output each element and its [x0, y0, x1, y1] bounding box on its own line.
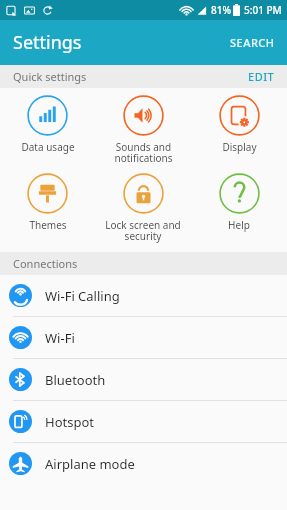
staticText: Settings [13, 30, 82, 55]
staticText: Quick settings [13, 69, 87, 84]
staticText: Wi-Fi Calling [45, 287, 120, 305]
button[interactable]: Airplane mode [0, 443, 287, 484]
button[interactable]: Help [191, 173, 287, 232]
staticText: 5:01 PM [244, 3, 282, 17]
button[interactable]: Data usage [0, 95, 95, 154]
staticText: Data usage [21, 140, 75, 154]
staticText: Lock screen and security [105, 218, 181, 243]
button[interactable]: Hotspot [0, 401, 287, 442]
button[interactable]: EDIT [236, 65, 287, 88]
staticText: Sounds and notifications [114, 140, 173, 165]
button[interactable]: Themes [0, 173, 95, 232]
button[interactable]: Wi-Fi Calling [0, 275, 287, 316]
staticText: Themes [29, 218, 67, 232]
button[interactable]: Sounds and notifications [95, 95, 191, 165]
staticText: EDIT [248, 69, 275, 84]
button[interactable]: Display [191, 95, 287, 154]
staticText: Display [222, 140, 257, 154]
staticText: Bluetooth [45, 371, 106, 389]
staticText: SEARCH [230, 35, 275, 50]
staticText: Hotspot [45, 413, 94, 431]
staticText: 81% [211, 3, 231, 17]
button[interactable]: Wi-Fi [0, 317, 287, 358]
staticText: Airplane mode [45, 455, 135, 473]
staticText: Wi-Fi [45, 329, 75, 347]
staticText: Help [228, 218, 250, 232]
button[interactable]: Lock screen and security [95, 173, 191, 243]
button[interactable]: Bluetooth [0, 359, 287, 400]
staticText: Connections [13, 256, 78, 271]
button[interactable]: SEARCH [218, 25, 287, 60]
